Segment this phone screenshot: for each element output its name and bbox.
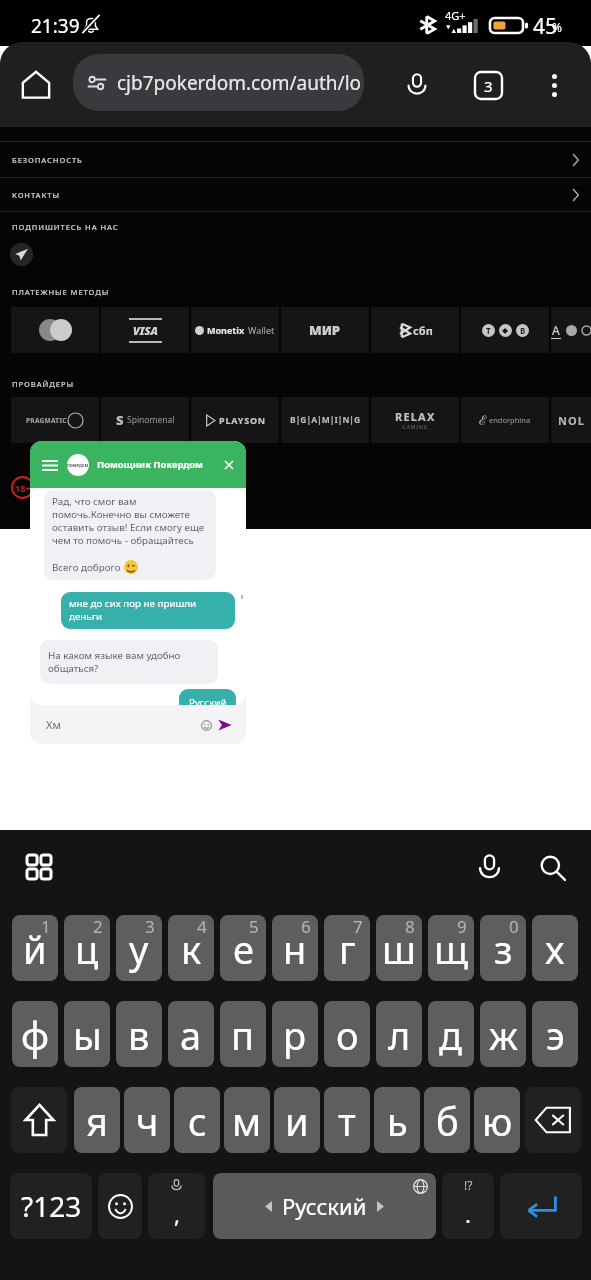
button[interactable]: Русский — [179, 689, 236, 705]
staticText: 2 — [93, 915, 103, 938]
button[interactable]: Monetix — [191, 307, 279, 353]
staticText: T — [486, 325, 491, 336]
button[interactable]: о — [324, 1001, 370, 1067]
button[interactable]: 5 — [220, 915, 266, 981]
button[interactable]: 0 — [480, 915, 526, 981]
staticText: 7 — [353, 915, 363, 938]
staticText: VISA — [133, 323, 158, 338]
button[interactable]: л — [376, 1001, 422, 1067]
button[interactable]: A — [551, 307, 591, 353]
staticText: о — [336, 1009, 359, 1061]
button[interactable]: Shift — [11, 1087, 67, 1153]
button[interactable]: 1 — [12, 915, 58, 981]
button[interactable]: Symbols — [10, 1173, 92, 1239]
staticText: щ — [434, 923, 469, 975]
button[interactable]: Backspace — [525, 1087, 581, 1153]
button[interactable]: ж — [480, 1001, 526, 1067]
button[interactable]: Emoji — [196, 715, 216, 735]
button[interactable]: T — [461, 307, 549, 353]
button[interactable]: B|G|A|M|I|N|G — [281, 397, 369, 443]
button[interactable]: ю — [474, 1087, 520, 1153]
button[interactable]: Emoji — [98, 1173, 142, 1239]
button[interactable]: м — [224, 1087, 270, 1153]
button[interactable]: а — [168, 1001, 214, 1067]
button[interactable]: КОНТАКТЫ — [0, 178, 591, 211]
button[interactable]: 8 — [376, 915, 422, 981]
button[interactable]: Clipboard — [19, 847, 59, 887]
staticText: б — [436, 1095, 459, 1147]
staticText: Русский — [282, 1191, 367, 1221]
button[interactable]: п — [220, 1001, 266, 1067]
staticText: Помощник Покердом — [97, 458, 203, 471]
staticText: ПОКЕРДОМ — [67, 463, 89, 468]
button[interactable]: Voice search — [392, 60, 442, 110]
staticText: endorphina — [489, 415, 531, 425]
button[interactable]: х — [532, 915, 578, 981]
staticText: ы — [73, 1009, 102, 1061]
staticText: 6 — [301, 915, 311, 938]
staticText: Monetix — [207, 324, 245, 336]
button[interactable]: PLAYSON — [191, 397, 279, 443]
button[interactable]: Send — [214, 714, 236, 736]
staticText: Хм — [46, 717, 61, 732]
button[interactable]: ф — [12, 1001, 58, 1067]
button[interactable]: я — [74, 1087, 120, 1153]
button[interactable]: с — [174, 1087, 220, 1153]
button[interactable]: Home — [13, 62, 59, 108]
staticText: RELAX — [395, 409, 436, 424]
button[interactable]: т — [324, 1087, 370, 1153]
staticText: м — [232, 1095, 262, 1147]
staticText: я — [86, 1095, 108, 1147]
button[interactable]: ч — [124, 1087, 170, 1153]
button[interactable]: More options — [531, 62, 577, 108]
button[interactable]: Space — [213, 1173, 436, 1239]
staticText: й — [23, 923, 47, 975]
button[interactable]: сбп — [371, 307, 459, 353]
button[interactable]: в — [116, 1001, 162, 1067]
staticText: 18+ — [15, 482, 31, 494]
button[interactable]: ь — [374, 1087, 420, 1153]
button[interactable] — [11, 307, 99, 353]
button[interactable]: 2 — [64, 915, 110, 981]
staticText: ?123 — [21, 1187, 82, 1225]
staticText: B|G|A|M|I|N|G — [290, 414, 361, 426]
staticText: !? — [464, 1177, 473, 1193]
button[interactable]: Close — [218, 454, 240, 476]
staticText: г — [339, 923, 356, 975]
button[interactable]: PRAGMATIC — [11, 397, 99, 443]
staticText: 8 — [405, 915, 415, 938]
button[interactable]: 6 — [272, 915, 318, 981]
button[interactable]: Menu — [38, 453, 62, 477]
button[interactable]: Tabs — [464, 61, 512, 109]
button[interactable]: VISA — [101, 307, 189, 353]
button[interactable]: 4 — [168, 915, 214, 981]
button[interactable]: МИР — [281, 307, 369, 353]
staticText: 5 — [249, 915, 259, 938]
button[interactable]: Telegram — [10, 243, 33, 266]
button[interactable]: Voice input — [468, 846, 510, 888]
button[interactable]: !? — [442, 1173, 494, 1239]
staticText: КОНТАКТЫ — [12, 190, 60, 200]
staticText: ПЛАТЕЖНЫЕ МЕТОДЫ — [12, 287, 110, 297]
staticText: 0 — [509, 915, 519, 938]
button[interactable]: р — [272, 1001, 318, 1067]
button[interactable]: cjb7pokerdom.com/auth/lo — [73, 54, 364, 111]
button[interactable]: э — [532, 1001, 578, 1067]
button[interactable]: 3 — [116, 915, 162, 981]
button[interactable]: д — [428, 1001, 474, 1067]
button[interactable]: 7 — [324, 915, 370, 981]
button[interactable]: RELAX — [371, 397, 459, 443]
button[interactable]: 9 — [428, 915, 474, 981]
button[interactable]: Enter — [500, 1173, 582, 1239]
staticText: р — [283, 1009, 307, 1061]
button[interactable]: ы — [64, 1001, 110, 1067]
button[interactable]: БЕЗОПАСНОСТЬ — [0, 142, 591, 177]
button[interactable]: NOL — [551, 397, 591, 443]
button[interactable]: ℰ — [461, 397, 549, 443]
button[interactable]: S — [101, 397, 189, 443]
staticText: ПОДПИШИТЕСЬ НА НАС — [12, 222, 119, 232]
button[interactable]: Search — [531, 846, 573, 888]
button[interactable]: и — [274, 1087, 320, 1153]
button[interactable]: б — [424, 1087, 470, 1153]
button[interactable]: , — [148, 1173, 205, 1239]
